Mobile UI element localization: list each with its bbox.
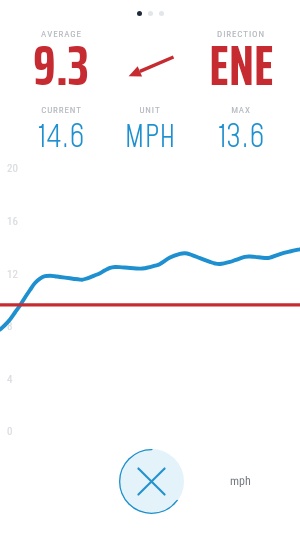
staticText: 9.3: [33, 20, 89, 110]
staticText: mph: [230, 474, 251, 488]
staticText: 4: [7, 373, 13, 386]
staticText: 0: [7, 425, 13, 438]
staticText: MAX: [231, 105, 251, 116]
staticText: DIRECTION: [217, 29, 265, 40]
staticText: AVERAGE: [41, 29, 82, 40]
staticText: CURRENT: [41, 105, 82, 116]
button[interactable]: Stop recording: [119, 449, 184, 514]
staticText: 13.6: [218, 116, 265, 159]
staticText: 16: [7, 215, 18, 228]
staticText: UNIT: [139, 105, 161, 116]
staticText: 12: [7, 268, 18, 281]
staticText: ENE: [209, 20, 274, 110]
staticText: MPH: [124, 116, 176, 159]
staticText: 8: [7, 320, 13, 333]
staticText: 14.6: [38, 116, 85, 159]
staticText: 20: [7, 162, 18, 175]
